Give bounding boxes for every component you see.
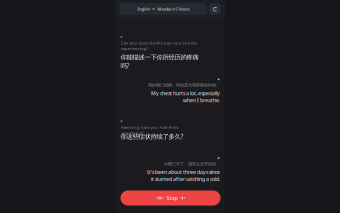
staticText: Can you describe the pain you've been ex… (120, 40, 197, 51)
button[interactable]: English (120, 3, 207, 15)
staticText: 我的胸口很痛，特别是当我呼吸的时候。 (147, 82, 219, 88)
staticText: My chest hurts a lot, especially when I … (150, 90, 219, 104)
staticText: How long have you had these symptoms? (120, 124, 178, 130)
staticText: 你能描述一下你所经历的疼痛吗? (120, 53, 198, 62)
staticText: 大概三天了，感冒之后开始的。 (163, 161, 219, 166)
button[interactable]: Restart conversation (209, 3, 221, 14)
staticText: Stop (167, 194, 178, 202)
staticText: Mandarin Chinese (157, 6, 189, 12)
staticText: 你这些症状持续了多久? (120, 132, 183, 141)
staticText: It's been about three days since it star… (146, 168, 219, 183)
staticText: English (137, 6, 149, 12)
button[interactable]: Stop (120, 190, 220, 205)
